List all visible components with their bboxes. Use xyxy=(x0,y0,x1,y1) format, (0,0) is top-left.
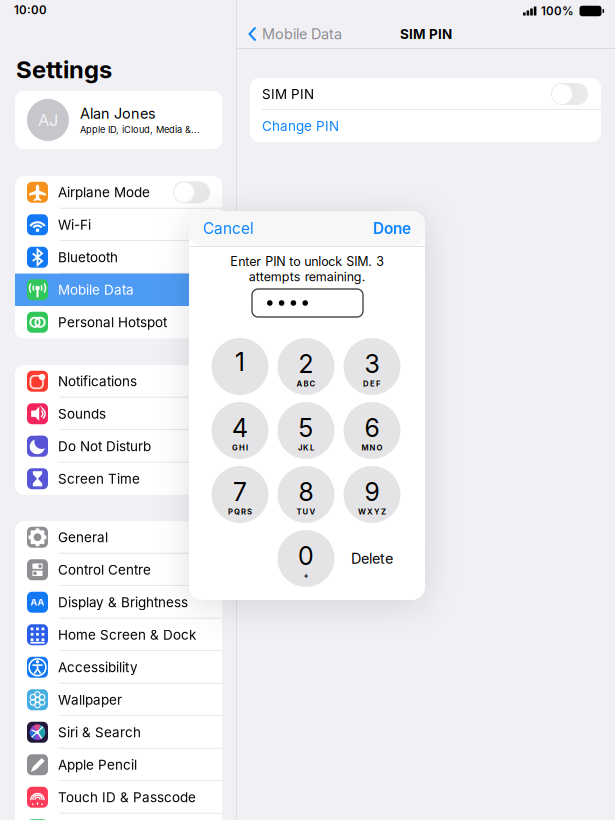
staticText: Siri & Search xyxy=(58,724,141,740)
staticText: SIM PIN xyxy=(262,86,314,102)
button[interactable]: Bluetooth xyxy=(15,241,222,273)
button[interactable]: Accessibility xyxy=(15,651,222,683)
staticText: Airplane Mode xyxy=(58,184,150,200)
staticText: SIM PIN xyxy=(400,26,452,42)
button[interactable]: Sounds xyxy=(15,397,222,430)
staticText: WXYZ xyxy=(358,507,386,516)
button[interactable]: Mobile Data xyxy=(237,25,342,43)
button[interactable]: Touch ID & Passcode xyxy=(15,781,222,813)
button[interactable]: Airplane Mode xyxy=(15,176,222,208)
button[interactable]: Apple Pencil xyxy=(15,748,222,781)
staticText: Mobile Data xyxy=(262,25,342,43)
staticText: Screen Time xyxy=(58,471,140,487)
button[interactable]: Mobile Data xyxy=(15,273,222,306)
button[interactable]: AJ xyxy=(15,91,222,149)
button[interactable]: SIM PIN xyxy=(250,78,601,110)
button[interactable]: 1 xyxy=(211,338,268,395)
button[interactable]: Home Screen & Dock xyxy=(15,618,222,651)
staticText: PQRS xyxy=(228,507,252,516)
staticText: AJ xyxy=(38,110,58,130)
staticText: AA xyxy=(30,597,44,608)
staticText: + xyxy=(303,571,308,580)
staticText: General xyxy=(58,529,108,545)
staticText: TUV xyxy=(296,507,315,516)
button[interactable]: 9 xyxy=(343,466,400,523)
staticText: Touch ID & Passcode xyxy=(58,789,196,805)
button[interactable]: Personal Hotspot xyxy=(15,306,222,338)
staticText: Mobile Data xyxy=(58,282,134,298)
staticText: Accessibility xyxy=(58,659,138,675)
staticText: ABC xyxy=(296,379,315,388)
staticText: Done xyxy=(373,219,411,238)
button[interactable]: Change PIN xyxy=(250,110,601,142)
button[interactable]: Done xyxy=(373,210,425,247)
button[interactable]: Cancel xyxy=(189,210,254,247)
staticText: Display & Brightness xyxy=(58,594,188,610)
staticText: DEF xyxy=(363,379,381,388)
staticText: Cancel xyxy=(203,219,254,238)
staticText: JKL xyxy=(298,443,314,452)
staticText: Notifications xyxy=(58,373,137,389)
staticText: Control Centre xyxy=(58,562,151,578)
staticText: Do Not Disturb xyxy=(58,438,151,454)
button[interactable]: 2 xyxy=(277,338,334,395)
button[interactable]: Screen Time xyxy=(15,462,222,495)
button[interactable]: 3 xyxy=(343,338,400,395)
button[interactable]: 7 xyxy=(211,466,268,523)
staticText: MNO xyxy=(361,443,382,452)
button[interactable]: General xyxy=(15,521,222,553)
staticText: 7 xyxy=(233,477,247,507)
staticText: Sounds xyxy=(58,406,106,422)
staticText: 9 xyxy=(364,477,379,507)
staticText: 2 xyxy=(298,349,313,379)
staticText: 100% xyxy=(541,4,574,18)
button[interactable]: 8 xyxy=(277,466,334,523)
staticText: 8 xyxy=(298,477,313,507)
staticText: Apple Pencil xyxy=(58,757,137,773)
button[interactable]: SOS xyxy=(15,813,222,820)
staticText: Bluetooth xyxy=(58,249,118,265)
staticText: Personal Hotspot xyxy=(58,314,167,330)
staticText: Home Screen & Dock xyxy=(58,627,196,643)
staticText: 4 xyxy=(232,413,248,443)
button[interactable]: Do Not Disturb xyxy=(15,430,222,462)
staticText: 6 xyxy=(364,413,379,443)
staticText: 5 xyxy=(298,413,313,443)
staticText: GHI xyxy=(232,443,248,452)
staticText: Enter PIN to unlock SIM. 3 attempts rema… xyxy=(230,254,384,284)
staticText: 1 xyxy=(235,347,245,377)
staticText: 3 xyxy=(364,349,379,379)
staticText: Wallpaper xyxy=(58,692,122,708)
button[interactable]: Notifications xyxy=(15,365,222,397)
staticText: Alan Jones xyxy=(80,105,156,122)
button[interactable]: Control Centre xyxy=(15,553,222,586)
staticText: Change PIN xyxy=(262,118,339,134)
button[interactable]: Wallpaper xyxy=(15,683,222,716)
button[interactable]: Siri & Search xyxy=(15,716,222,748)
button[interactable]: 0 xyxy=(277,530,334,587)
staticText: 0 xyxy=(298,541,314,571)
staticText: Settings xyxy=(16,55,112,84)
staticText: Delete xyxy=(351,550,393,567)
staticText: Apple ID, iCloud, Media &... xyxy=(80,124,200,135)
button[interactable]: 4 xyxy=(211,402,268,459)
button[interactable]: Delete xyxy=(343,530,400,587)
staticText: Wi-Fi xyxy=(58,217,91,233)
button[interactable]: 6 xyxy=(343,402,400,459)
staticText: 10:00 xyxy=(14,3,47,17)
button[interactable]: 5 xyxy=(277,402,334,459)
button[interactable]: AA xyxy=(15,586,222,618)
button[interactable]: Wi-Fi xyxy=(15,208,222,241)
